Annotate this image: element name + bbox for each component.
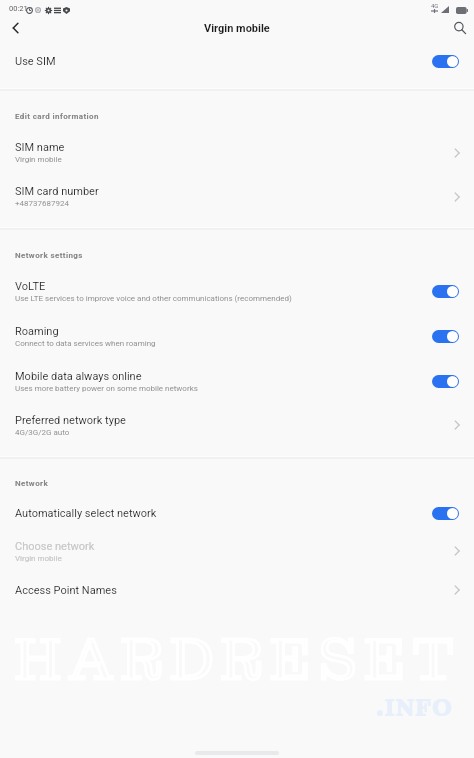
staticText: .INFO xyxy=(376,692,453,723)
button[interactable]: Access Point Names xyxy=(0,577,474,603)
button[interactable]: Mobile data always online xyxy=(0,359,474,404)
button[interactable]: Preferred network type xyxy=(0,404,474,446)
button[interactable]: Choose network xyxy=(0,529,474,573)
staticText: Roaming xyxy=(15,325,59,338)
staticText: SIM card number xyxy=(15,185,99,198)
staticText: SIM name xyxy=(15,141,65,154)
staticText: Mobile data always online xyxy=(15,370,142,383)
staticText: Preferred network type xyxy=(15,414,126,427)
staticText: Choose network xyxy=(15,540,95,553)
button[interactable]: Automatically select network xyxy=(0,500,474,526)
button[interactable]: SIM card number xyxy=(0,174,474,219)
staticText: Virgin mobile xyxy=(204,22,270,35)
staticText: Automatically select network xyxy=(15,507,157,520)
button[interactable]: Search xyxy=(444,12,474,44)
staticText: Network xyxy=(15,479,49,488)
staticText: 00:21 xyxy=(9,4,28,13)
staticText: Virgin mobile xyxy=(15,554,62,563)
button[interactable]: VoLTE xyxy=(0,269,474,313)
staticText: Access Point Names xyxy=(15,584,117,597)
staticText: Connect to data services when roaming xyxy=(15,339,156,348)
button[interactable]: SIM name xyxy=(0,130,474,175)
staticText: Uses more battery power on some mobile n… xyxy=(15,384,198,393)
button[interactable]: Back xyxy=(0,12,32,44)
staticText: 4G xyxy=(431,2,439,9)
staticText: Use SIM xyxy=(15,55,56,68)
staticText: Virgin mobile xyxy=(15,155,62,164)
button[interactable]: Roaming xyxy=(0,314,474,359)
button[interactable]: Use SIM xyxy=(0,41,474,81)
staticText: 4G/3G/2G auto xyxy=(15,428,70,437)
staticText: +48737687924 xyxy=(15,199,69,208)
staticText: VoLTE xyxy=(15,280,46,293)
staticText: Use LTE services to improve voice and ot… xyxy=(15,294,292,303)
staticText: Network settings xyxy=(15,251,83,260)
staticText: Edit card information xyxy=(15,112,99,121)
